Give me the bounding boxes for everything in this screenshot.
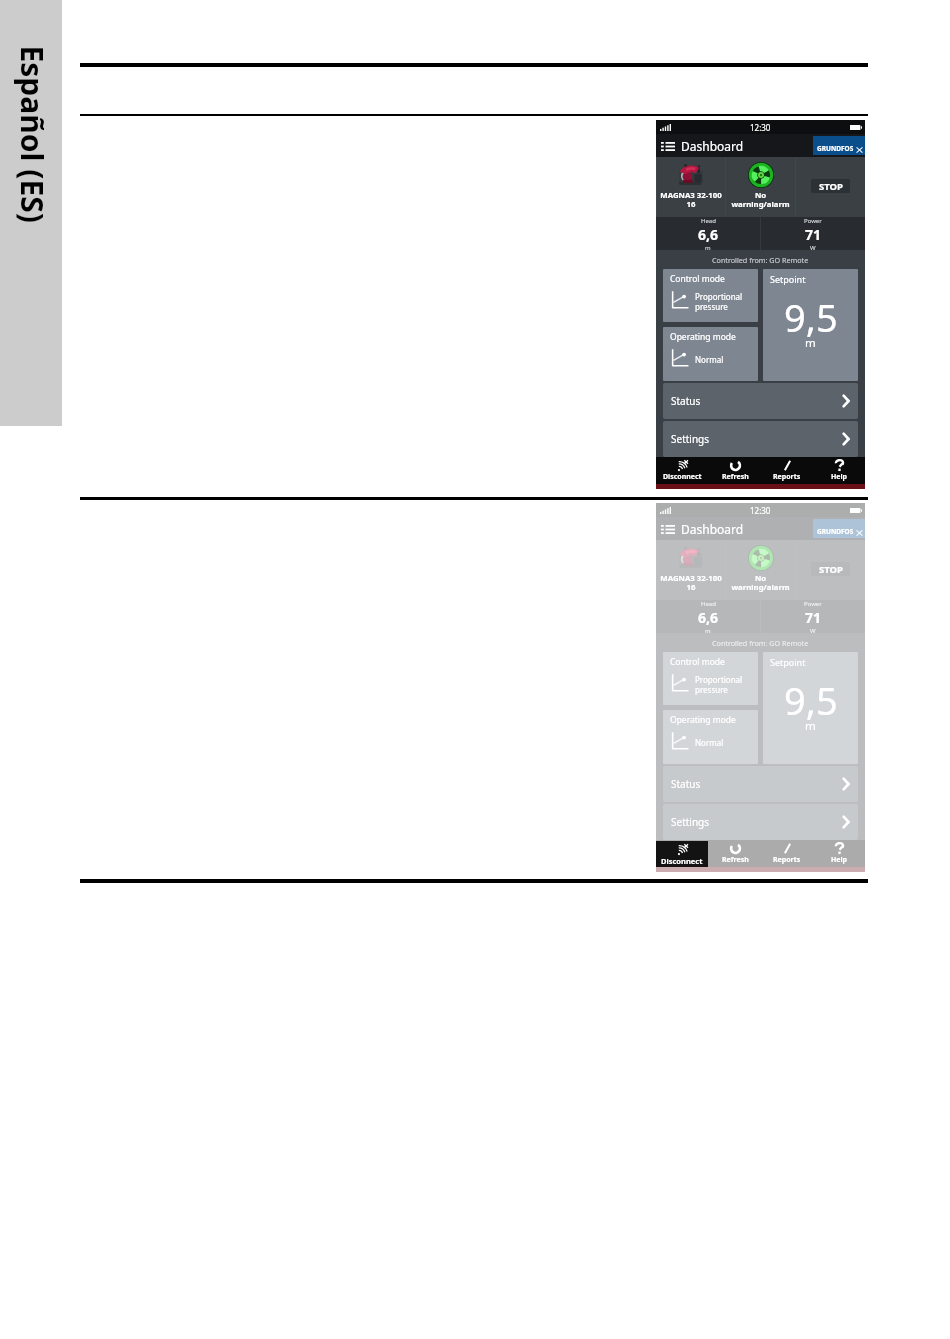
staticText: GRUNDFOS xyxy=(817,527,854,536)
staticText: Refresh xyxy=(722,855,749,865)
staticText: 9,5 xyxy=(784,674,838,726)
button[interactable]: Disconnect xyxy=(656,457,709,484)
staticText: Normal xyxy=(695,354,724,365)
staticText: Help xyxy=(831,472,848,482)
staticText: m xyxy=(705,627,711,633)
staticText: Head xyxy=(701,217,716,225)
button[interactable]: Operating mode xyxy=(663,327,758,381)
button[interactable]: Disconnect xyxy=(656,840,709,867)
staticText: GRUNDFOS xyxy=(817,144,854,153)
button[interactable]: Disconnect xyxy=(656,841,708,867)
staticText: Status xyxy=(671,394,701,408)
button[interactable]: Dashboard xyxy=(661,521,744,537)
button[interactable]: No warning/alarm xyxy=(726,540,795,600)
staticText: Reports xyxy=(773,855,801,865)
staticText: Power xyxy=(804,217,822,225)
staticText: Controlled from: GO Remote xyxy=(712,638,809,648)
staticText: 6,6 xyxy=(698,608,719,627)
button[interactable]: Dashboard xyxy=(661,138,744,154)
button[interactable]: Status xyxy=(663,383,858,419)
staticText: STOP xyxy=(819,563,843,576)
button[interactable]: Settings xyxy=(663,421,858,457)
button[interactable]: Control mode xyxy=(663,269,758,322)
button[interactable]: Status xyxy=(663,766,858,802)
staticText: Settings xyxy=(671,815,710,829)
staticText: No warning/alarm xyxy=(731,190,790,210)
staticText: Help xyxy=(831,855,848,865)
button[interactable]: Operating mode xyxy=(663,710,758,764)
staticText: No warning/alarm xyxy=(731,573,790,593)
staticText: Head xyxy=(701,600,716,608)
staticText: Disconnect xyxy=(661,856,703,866)
staticText: 12:30 xyxy=(750,505,771,516)
staticText: W xyxy=(810,627,816,633)
staticText: Disconnect xyxy=(663,472,702,482)
button[interactable]: STOP xyxy=(811,562,850,576)
staticText: 71 xyxy=(805,608,822,627)
button[interactable]: STOP xyxy=(811,179,850,193)
staticText: Dashboard xyxy=(681,521,744,537)
staticText: Operating mode xyxy=(670,331,736,343)
staticText: W xyxy=(810,244,816,250)
staticText: m xyxy=(805,718,816,734)
button[interactable]: No warning/alarm xyxy=(726,157,795,217)
button[interactable]: MAGNA3 32-100 16 xyxy=(657,157,725,217)
staticText: Reports xyxy=(773,472,801,482)
button[interactable]: Refresh xyxy=(709,840,761,867)
button[interactable]: Help xyxy=(813,457,865,484)
staticText: Control mode xyxy=(670,273,725,285)
staticText: STOP xyxy=(819,180,843,193)
staticText: Normal xyxy=(695,737,724,748)
staticText: MAGNA3 32-100 16 xyxy=(660,573,722,593)
staticText: Setpoint xyxy=(770,656,806,668)
staticText: Español (ES) xyxy=(11,45,52,223)
button[interactable]: Refresh xyxy=(709,457,761,484)
button[interactable]: Setpoint xyxy=(763,652,858,764)
staticText: 9,5 xyxy=(784,291,838,343)
staticText: Setpoint xyxy=(770,273,806,285)
staticText: Control mode xyxy=(670,656,725,668)
button[interactable]: Grundfos xyxy=(813,136,865,155)
button[interactable]: Setpoint xyxy=(763,269,858,381)
staticText: 6,6 xyxy=(698,225,719,244)
staticText: Dashboard xyxy=(681,138,744,154)
staticText: Settings xyxy=(671,432,710,446)
staticText: Power xyxy=(804,600,822,608)
button[interactable]: Grundfos xyxy=(813,519,865,538)
button[interactable]: Help xyxy=(813,840,865,867)
staticText: Proportional pressure xyxy=(695,291,743,312)
button[interactable]: MAGNA3 32-100 16 xyxy=(657,540,725,600)
staticText: Disconnect xyxy=(663,855,702,865)
staticText: Controlled from: GO Remote xyxy=(712,255,809,265)
staticText: Status xyxy=(671,777,701,791)
staticText: m xyxy=(705,244,711,250)
staticText: 12:30 xyxy=(750,122,771,133)
button[interactable]: Reports xyxy=(761,457,813,484)
staticText: m xyxy=(805,335,816,351)
staticText: Refresh xyxy=(722,472,749,482)
button[interactable]: Settings xyxy=(663,804,858,840)
button[interactable]: Reports xyxy=(761,840,813,867)
staticText: 71 xyxy=(805,225,822,244)
staticText: Operating mode xyxy=(670,714,736,726)
button[interactable]: Control mode xyxy=(663,652,758,705)
staticText: Proportional pressure xyxy=(695,674,743,695)
staticText: MAGNA3 32-100 16 xyxy=(660,190,722,210)
